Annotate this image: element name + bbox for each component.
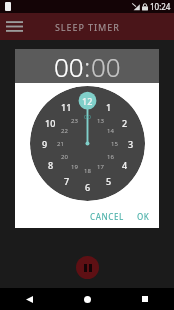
staticText: 16 (107, 153, 114, 161)
button[interactable]: Home (58, 288, 116, 310)
staticText: 20 (61, 153, 68, 161)
staticText: OK (137, 211, 150, 222)
staticText: 2 (122, 117, 128, 129)
staticText: 19 (71, 163, 78, 171)
staticText: 3 (128, 138, 134, 150)
button[interactable]: 00 (54, 49, 84, 83)
staticText: 14 (107, 127, 114, 135)
staticText: 10 (45, 117, 56, 129)
staticText: : (84, 49, 91, 83)
staticText: 11 (61, 101, 72, 113)
staticText: 8 (48, 159, 54, 171)
button[interactable]: Pause timer (76, 256, 99, 279)
staticText: 6 (85, 181, 91, 193)
staticText: 1 (106, 101, 112, 113)
button[interactable]: 00 (91, 49, 121, 83)
button[interactable]: OK (132, 207, 155, 226)
staticText: 12 (82, 95, 93, 107)
staticText: 23 (71, 117, 78, 125)
staticText: 7 (64, 175, 70, 187)
staticText: 17 (97, 163, 104, 171)
staticText: 5 (106, 175, 112, 187)
staticText: SLEEP TIMER (55, 21, 120, 33)
staticText: 22 (61, 127, 68, 135)
staticText: 9 (42, 138, 48, 150)
staticText: 4 (122, 159, 128, 171)
staticText: CANCEL (90, 211, 124, 222)
staticText: 13 (97, 117, 104, 125)
button[interactable]: CANCEL (85, 207, 129, 226)
staticText: 15 (111, 140, 118, 148)
staticText: 00 (84, 113, 91, 121)
button[interactable]: Back (0, 288, 58, 310)
staticText: 21 (57, 140, 64, 148)
button[interactable]: Open navigation menu (0, 13, 28, 40)
staticText: 18 (84, 167, 91, 175)
button[interactable]: Recent apps (116, 288, 174, 310)
button[interactable]: Select hour on 24 hour dial (30, 86, 145, 201)
staticText: 10:24 (150, 1, 171, 12)
